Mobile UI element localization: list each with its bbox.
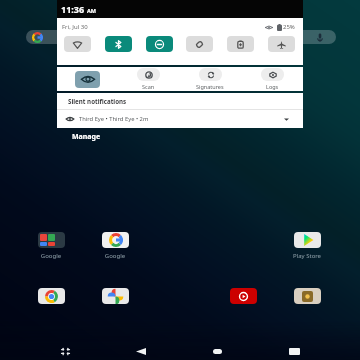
button[interactable]: Quick setting [105,36,132,52]
button[interactable]: App [220,288,266,304]
button[interactable]: Manage [57,128,303,146]
staticText: Google [28,252,74,260]
staticText: Third Eye • Third Eye • 2m [79,115,149,123]
button[interactable]: Quick setting [64,36,91,52]
button[interactable]: Home [179,343,256,360]
button[interactable]: Quick setting [227,36,254,52]
staticText: 11:36 [61,3,85,15]
button[interactable]: Quick setting [268,36,295,52]
button[interactable]: App [92,288,138,304]
staticText: 25% [283,23,295,31]
button[interactable]: App [284,288,330,304]
staticText: Silent notifications [68,97,127,105]
button[interactable]: Back [103,343,179,360]
button[interactable]: App [28,288,74,304]
button[interactable]: Silent notifications [57,93,303,109]
staticText: Fri, Jul 30 [62,23,88,31]
button[interactable]: Play Store [284,232,330,260]
button[interactable]: Logs [241,67,303,91]
button[interactable]: Google [92,232,138,260]
staticText: Manage [72,132,101,142]
staticText: Scan [142,83,155,90]
staticText: AM [87,7,96,14]
staticText: Logs [266,83,279,90]
button[interactable]: Search [26,30,336,44]
button[interactable]: Scan [118,67,179,91]
staticText: Google [92,252,138,260]
button[interactable]: Quick setting [146,36,173,52]
button[interactable]: Google [28,232,74,260]
button[interactable]: Collapse [27,343,103,360]
button[interactable]: Third Eye • Third Eye • 2m [57,110,303,128]
button[interactable]: Signatures [179,67,241,91]
staticText: Signatures [196,83,224,90]
button[interactable]: Quick setting [186,36,213,52]
staticText: Play Store [284,252,330,260]
button[interactable]: Third Eye [57,67,118,91]
button[interactable]: Recents [256,343,333,360]
